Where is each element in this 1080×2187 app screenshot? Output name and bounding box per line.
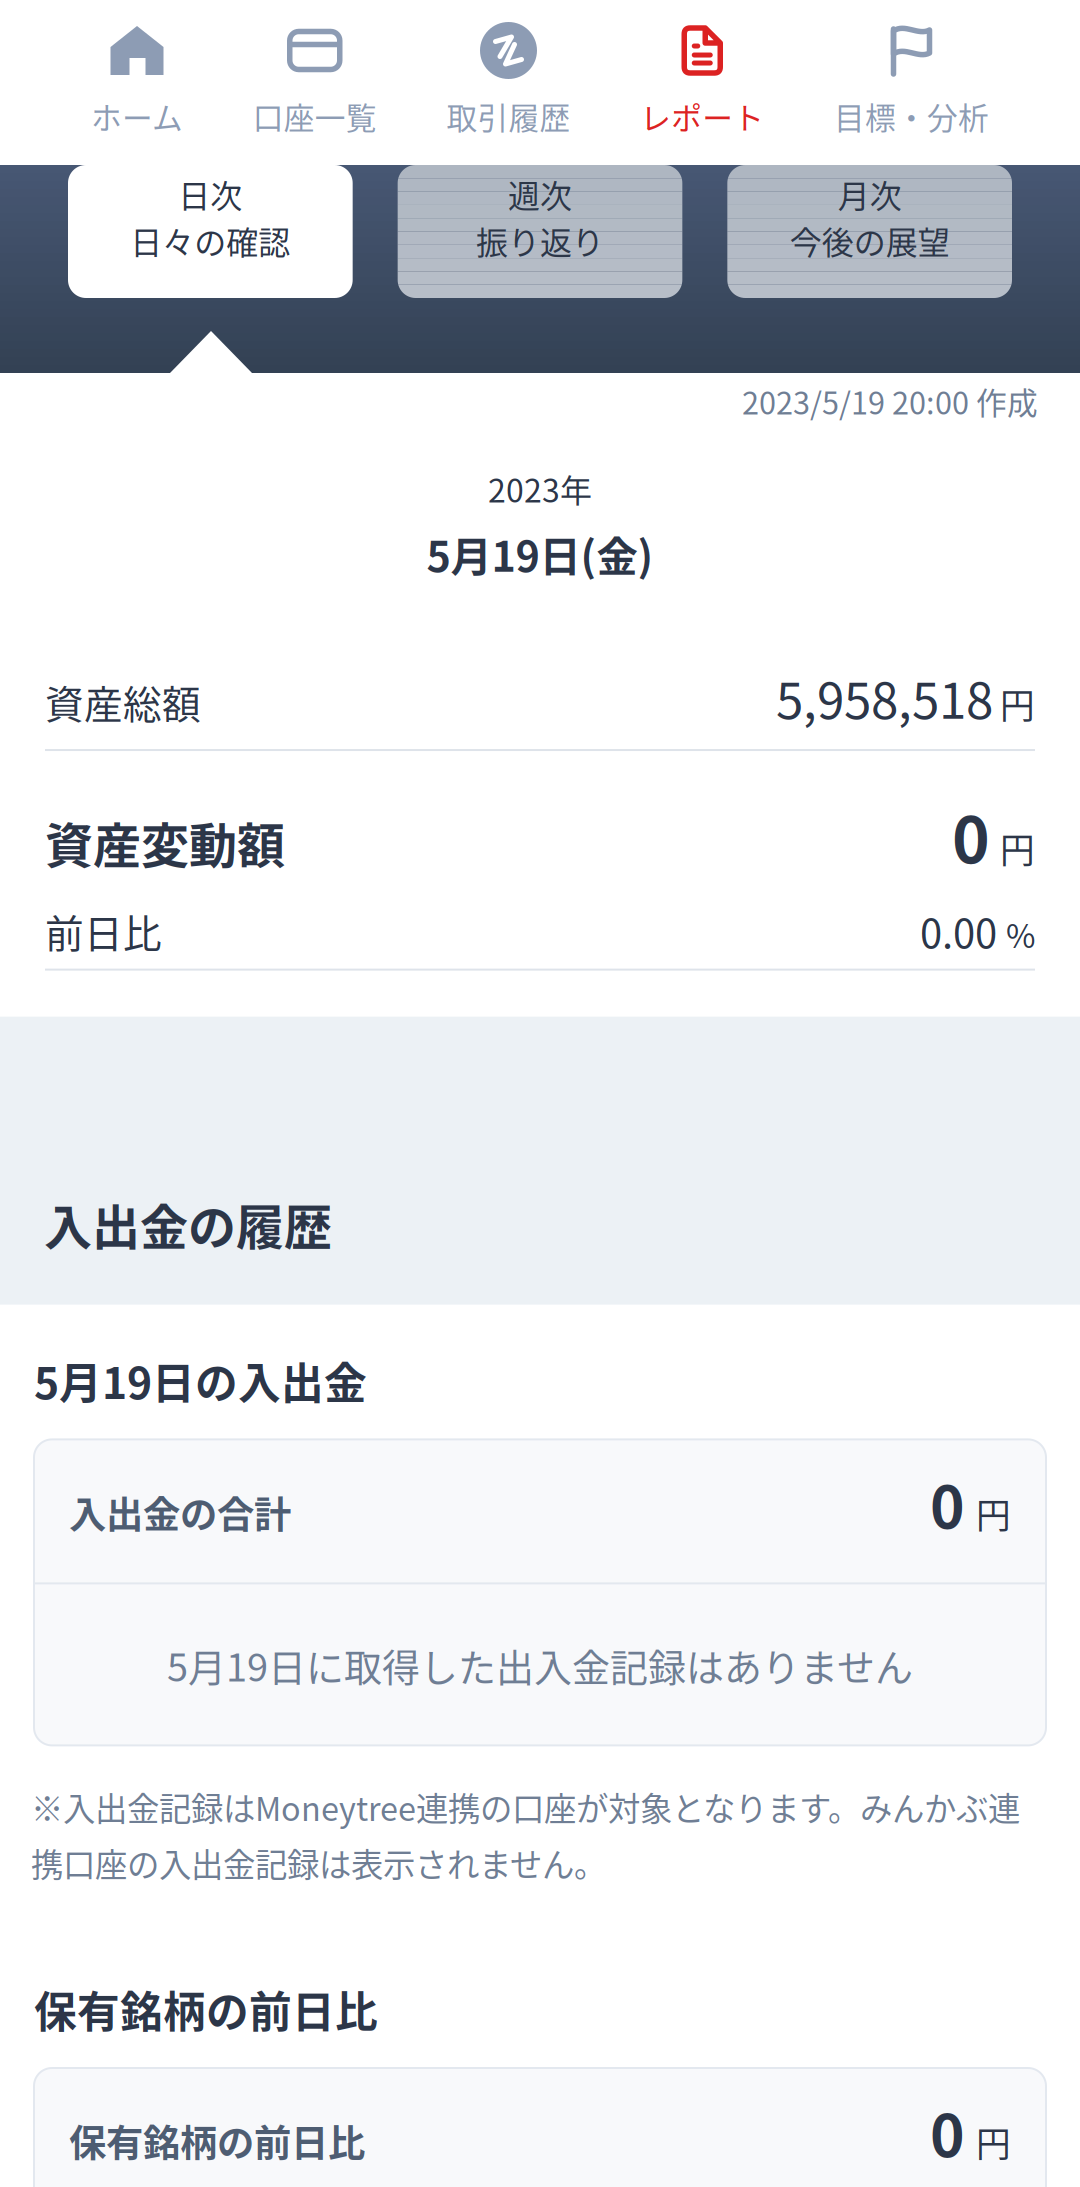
staticText: 0 bbox=[930, 1460, 965, 1545]
staticText: 前日比 bbox=[45, 903, 162, 959]
staticText: ホーム bbox=[91, 94, 183, 138]
staticText: 円 bbox=[1000, 679, 1035, 729]
staticText: 保有銘柄の前日比 bbox=[34, 1978, 378, 2040]
staticText: ※入出金記録はMoneytree連携の口座が対象となります。みんかぶ連携口座の入… bbox=[31, 1783, 1020, 1886]
staticText: 5月19日の入出金 bbox=[34, 1350, 367, 1411]
staticText: 0 bbox=[930, 2089, 965, 2174]
staticText: 月次 bbox=[838, 171, 902, 217]
staticText: 保有銘柄の前日比 bbox=[69, 2114, 365, 2168]
staticText: 目標・分析 bbox=[834, 94, 989, 138]
staticText: 円 bbox=[976, 2117, 1011, 2167]
staticText: 今後の展望 bbox=[790, 217, 950, 264]
staticText: 円 bbox=[1000, 823, 1035, 873]
button[interactable]: 目標・分析 bbox=[834, 0, 989, 165]
staticText: 振り返り bbox=[476, 217, 604, 264]
staticText: 週次 bbox=[508, 171, 572, 217]
staticText: 入出金の履歴 bbox=[44, 1189, 332, 1259]
staticText: 日々の確認 bbox=[130, 217, 290, 264]
staticText: 資産総額 bbox=[45, 674, 201, 730]
button[interactable]: 週次 bbox=[398, 165, 682, 298]
staticText: レポート bbox=[640, 94, 764, 138]
button[interactable]: レポート bbox=[640, 0, 764, 165]
button[interactable]: 口座一覧 bbox=[253, 0, 377, 165]
button[interactable]: 月次 bbox=[727, 165, 1012, 298]
staticText: 0.00 bbox=[920, 902, 997, 960]
staticText: 取引履歴 bbox=[446, 94, 570, 138]
staticText: 口座一覧 bbox=[253, 94, 377, 138]
button[interactable]: 取引履歴 bbox=[446, 0, 570, 165]
staticText: 円 bbox=[976, 1488, 1011, 1538]
staticText: 2023/5/19 20:00 作成 bbox=[742, 379, 1038, 423]
staticText: 5月19日(金) bbox=[426, 524, 653, 584]
staticText: 0 bbox=[952, 789, 990, 882]
staticText: 入出金の合計 bbox=[69, 1485, 291, 1539]
button[interactable]: 日次 bbox=[68, 165, 353, 298]
staticText: 5,958,518 bbox=[776, 662, 993, 733]
staticText: % bbox=[1006, 911, 1035, 957]
staticText: 5月19日に取得した出入金記録はありません bbox=[167, 1637, 913, 1692]
staticText: 資産変動額 bbox=[45, 808, 285, 877]
staticText: 2023年 bbox=[488, 465, 592, 512]
staticText: 日次 bbox=[178, 171, 242, 217]
button[interactable]: ホーム bbox=[91, 0, 183, 165]
